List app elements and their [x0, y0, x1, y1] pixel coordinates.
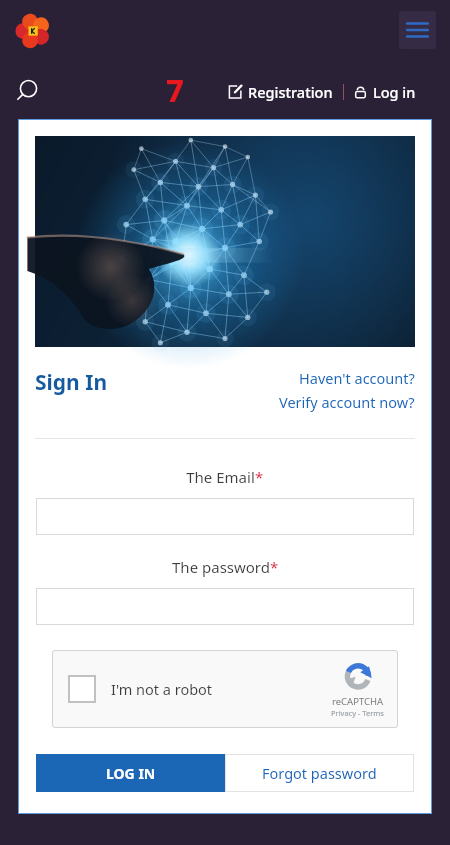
- staticText: *: [270, 557, 279, 577]
- button[interactable]: [36, 588, 414, 625]
- staticText: Registration: [248, 82, 333, 102]
- button[interactable]: Search: [12, 76, 42, 106]
- staticText: Forgot password: [262, 763, 377, 783]
- button[interactable]: Haven't account?: [299, 368, 415, 388]
- staticText: Log in: [373, 82, 416, 102]
- staticText: The Email: [186, 467, 255, 487]
- staticText: Privacy - Terms: [331, 708, 384, 718]
- staticText: reCAPTCHA: [332, 695, 384, 708]
- button[interactable]: Menu: [399, 11, 436, 49]
- button[interactable]: I'm not a robot: [68, 675, 213, 703]
- staticText: I'm not a robot: [111, 679, 213, 699]
- button[interactable]: Log in: [352, 76, 418, 108]
- button[interactable]: [36, 498, 414, 535]
- staticText: 7: [166, 69, 184, 111]
- button[interactable]: Home logo: [12, 9, 56, 53]
- staticText: The password: [172, 557, 270, 577]
- button[interactable]: Registration: [226, 76, 335, 108]
- staticText: Sign In: [35, 368, 108, 397]
- button[interactable]: Verify account now?: [279, 392, 415, 412]
- staticText: *: [255, 467, 264, 487]
- button[interactable]: LOG IN: [36, 754, 225, 792]
- staticText: LOG IN: [106, 764, 156, 783]
- button[interactable]: Forgot password: [225, 754, 414, 792]
